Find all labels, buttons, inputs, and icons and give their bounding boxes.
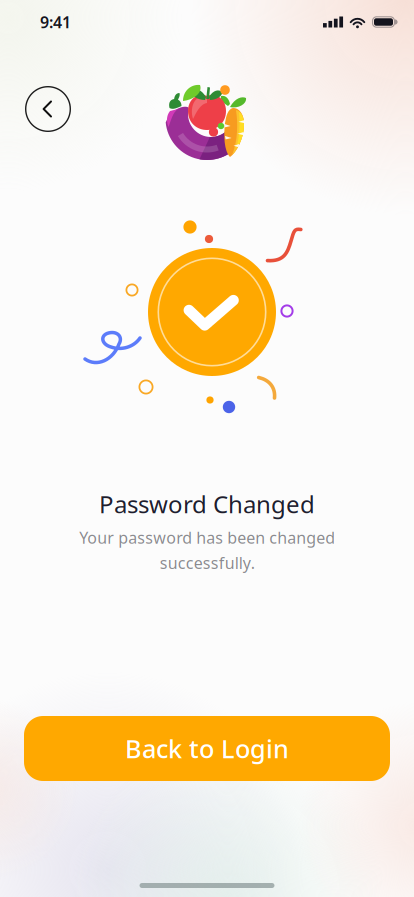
staticText: Your password has been changed successfu… bbox=[79, 527, 335, 573]
staticText: Password Changed bbox=[99, 488, 315, 520]
button[interactable]: Back bbox=[25, 86, 71, 132]
staticText: 9:41 bbox=[40, 11, 71, 33]
button[interactable]: Back to Login bbox=[24, 716, 390, 781]
staticText: Back to Login bbox=[125, 732, 289, 765]
